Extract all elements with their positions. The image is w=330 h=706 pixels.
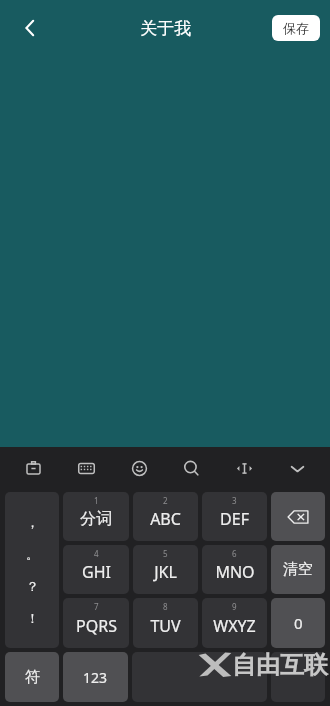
staticText: 123 — [83, 668, 108, 687]
staticText: ！ — [26, 610, 39, 626]
button[interactable]: 123 — [63, 652, 128, 702]
button[interactable]: Search — [171, 448, 211, 488]
button[interactable]: 8 — [133, 598, 198, 648]
button[interactable]: 2 — [133, 492, 198, 541]
staticText: 5 — [163, 548, 168, 559]
staticText: 。 — [26, 546, 39, 562]
staticText: 自由互联 — [232, 650, 328, 680]
button[interactable]: ， — [5, 492, 59, 648]
staticText: 8 — [163, 601, 168, 612]
staticText: MNO — [215, 561, 255, 583]
staticText: 2 — [163, 495, 168, 506]
staticText: GHI — [82, 561, 111, 583]
staticText: 7 — [94, 601, 99, 612]
staticText: 3 — [232, 495, 237, 506]
button[interactable]: Keyboard — [66, 448, 106, 488]
button[interactable]: Hide keyboard — [277, 448, 317, 488]
staticText: ， — [26, 514, 39, 530]
staticText: 关于我 — [140, 18, 191, 39]
staticText: 清空 — [283, 560, 313, 579]
staticText: 保存 — [283, 20, 309, 36]
button[interactable]: 3 — [202, 492, 267, 541]
staticText: 9 — [232, 601, 237, 612]
staticText: 符 — [25, 668, 40, 687]
button[interactable]: Clipboard — [13, 448, 53, 488]
staticText: PQRS — [76, 615, 117, 637]
staticText: 0 — [294, 613, 303, 633]
button[interactable] — [271, 492, 325, 541]
staticText: 1 — [94, 495, 99, 506]
staticText: 分词 — [80, 509, 112, 529]
button[interactable]: 9 — [202, 598, 267, 648]
button[interactable]: 1 — [63, 492, 129, 541]
staticText: DEF — [220, 508, 249, 530]
staticText: ？ — [26, 578, 39, 594]
button[interactable]: 7 — [63, 598, 129, 648]
button[interactable]: Move cursor — [224, 448, 264, 488]
button[interactable]: 清空 — [271, 545, 325, 594]
button[interactable]: Back — [8, 6, 52, 50]
staticText: TUV — [150, 615, 181, 637]
staticText: ABC — [150, 508, 181, 530]
staticText: 6 — [232, 548, 237, 559]
button[interactable]: 保存 — [272, 15, 320, 41]
button[interactable]: Emoji — [119, 448, 159, 488]
button[interactable] — [271, 652, 325, 702]
staticText: JKL — [154, 561, 177, 583]
button[interactable]: 0 — [271, 598, 325, 648]
button[interactable]: 5 — [133, 545, 198, 594]
staticText: WXYZ — [213, 615, 256, 637]
staticText: 4 — [94, 548, 99, 559]
button[interactable]: 4 — [63, 545, 129, 594]
button[interactable]: 6 — [202, 545, 267, 594]
button[interactable]: 符 — [5, 652, 59, 702]
button[interactable] — [132, 652, 267, 702]
